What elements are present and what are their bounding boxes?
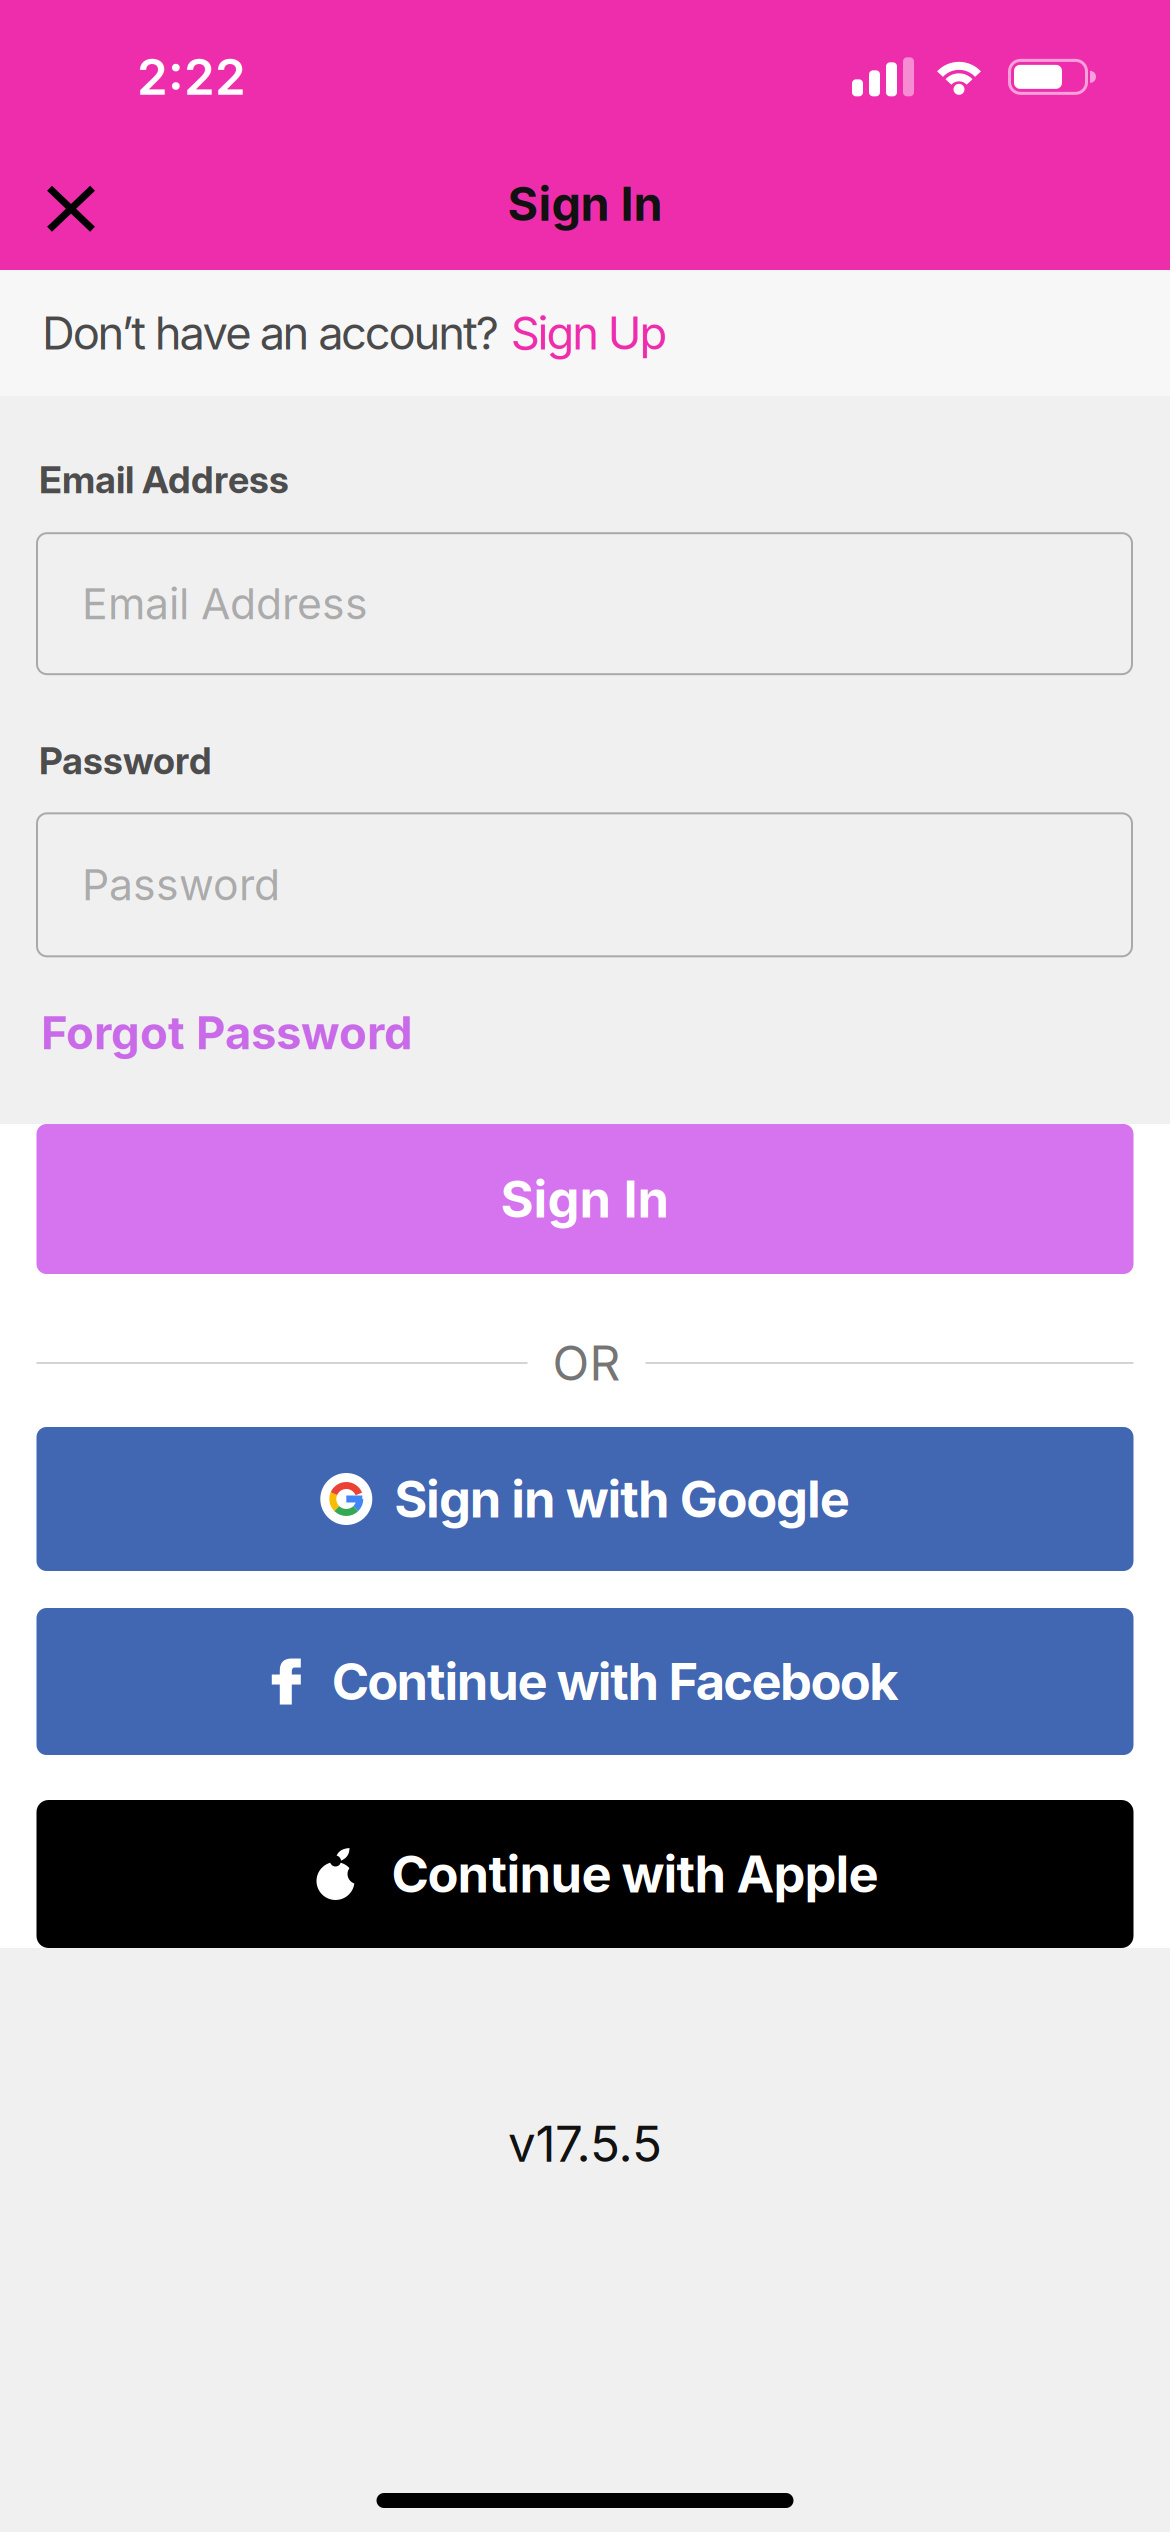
- staticText: Sign In: [500, 1168, 669, 1230]
- staticText: Forgot Password: [41, 1005, 413, 1060]
- staticText: v17.5.5: [508, 2114, 662, 2174]
- staticText: Continue with Facebook: [332, 1651, 898, 1712]
- staticText: Don’t have an account?: [42, 306, 499, 360]
- staticText: Email Address: [39, 457, 289, 502]
- staticText: OR: [552, 1334, 620, 1392]
- staticText: Password: [39, 738, 212, 783]
- staticText: Password: [82, 859, 280, 911]
- staticText: Sign Up: [511, 306, 668, 360]
- staticText: Sign In: [507, 175, 662, 232]
- staticText: 2:22: [137, 47, 246, 107]
- staticText: Continue with Apple: [391, 1843, 878, 1905]
- staticText: Sign in with Google: [394, 1468, 850, 1530]
- staticText: Email Address: [82, 578, 368, 629]
